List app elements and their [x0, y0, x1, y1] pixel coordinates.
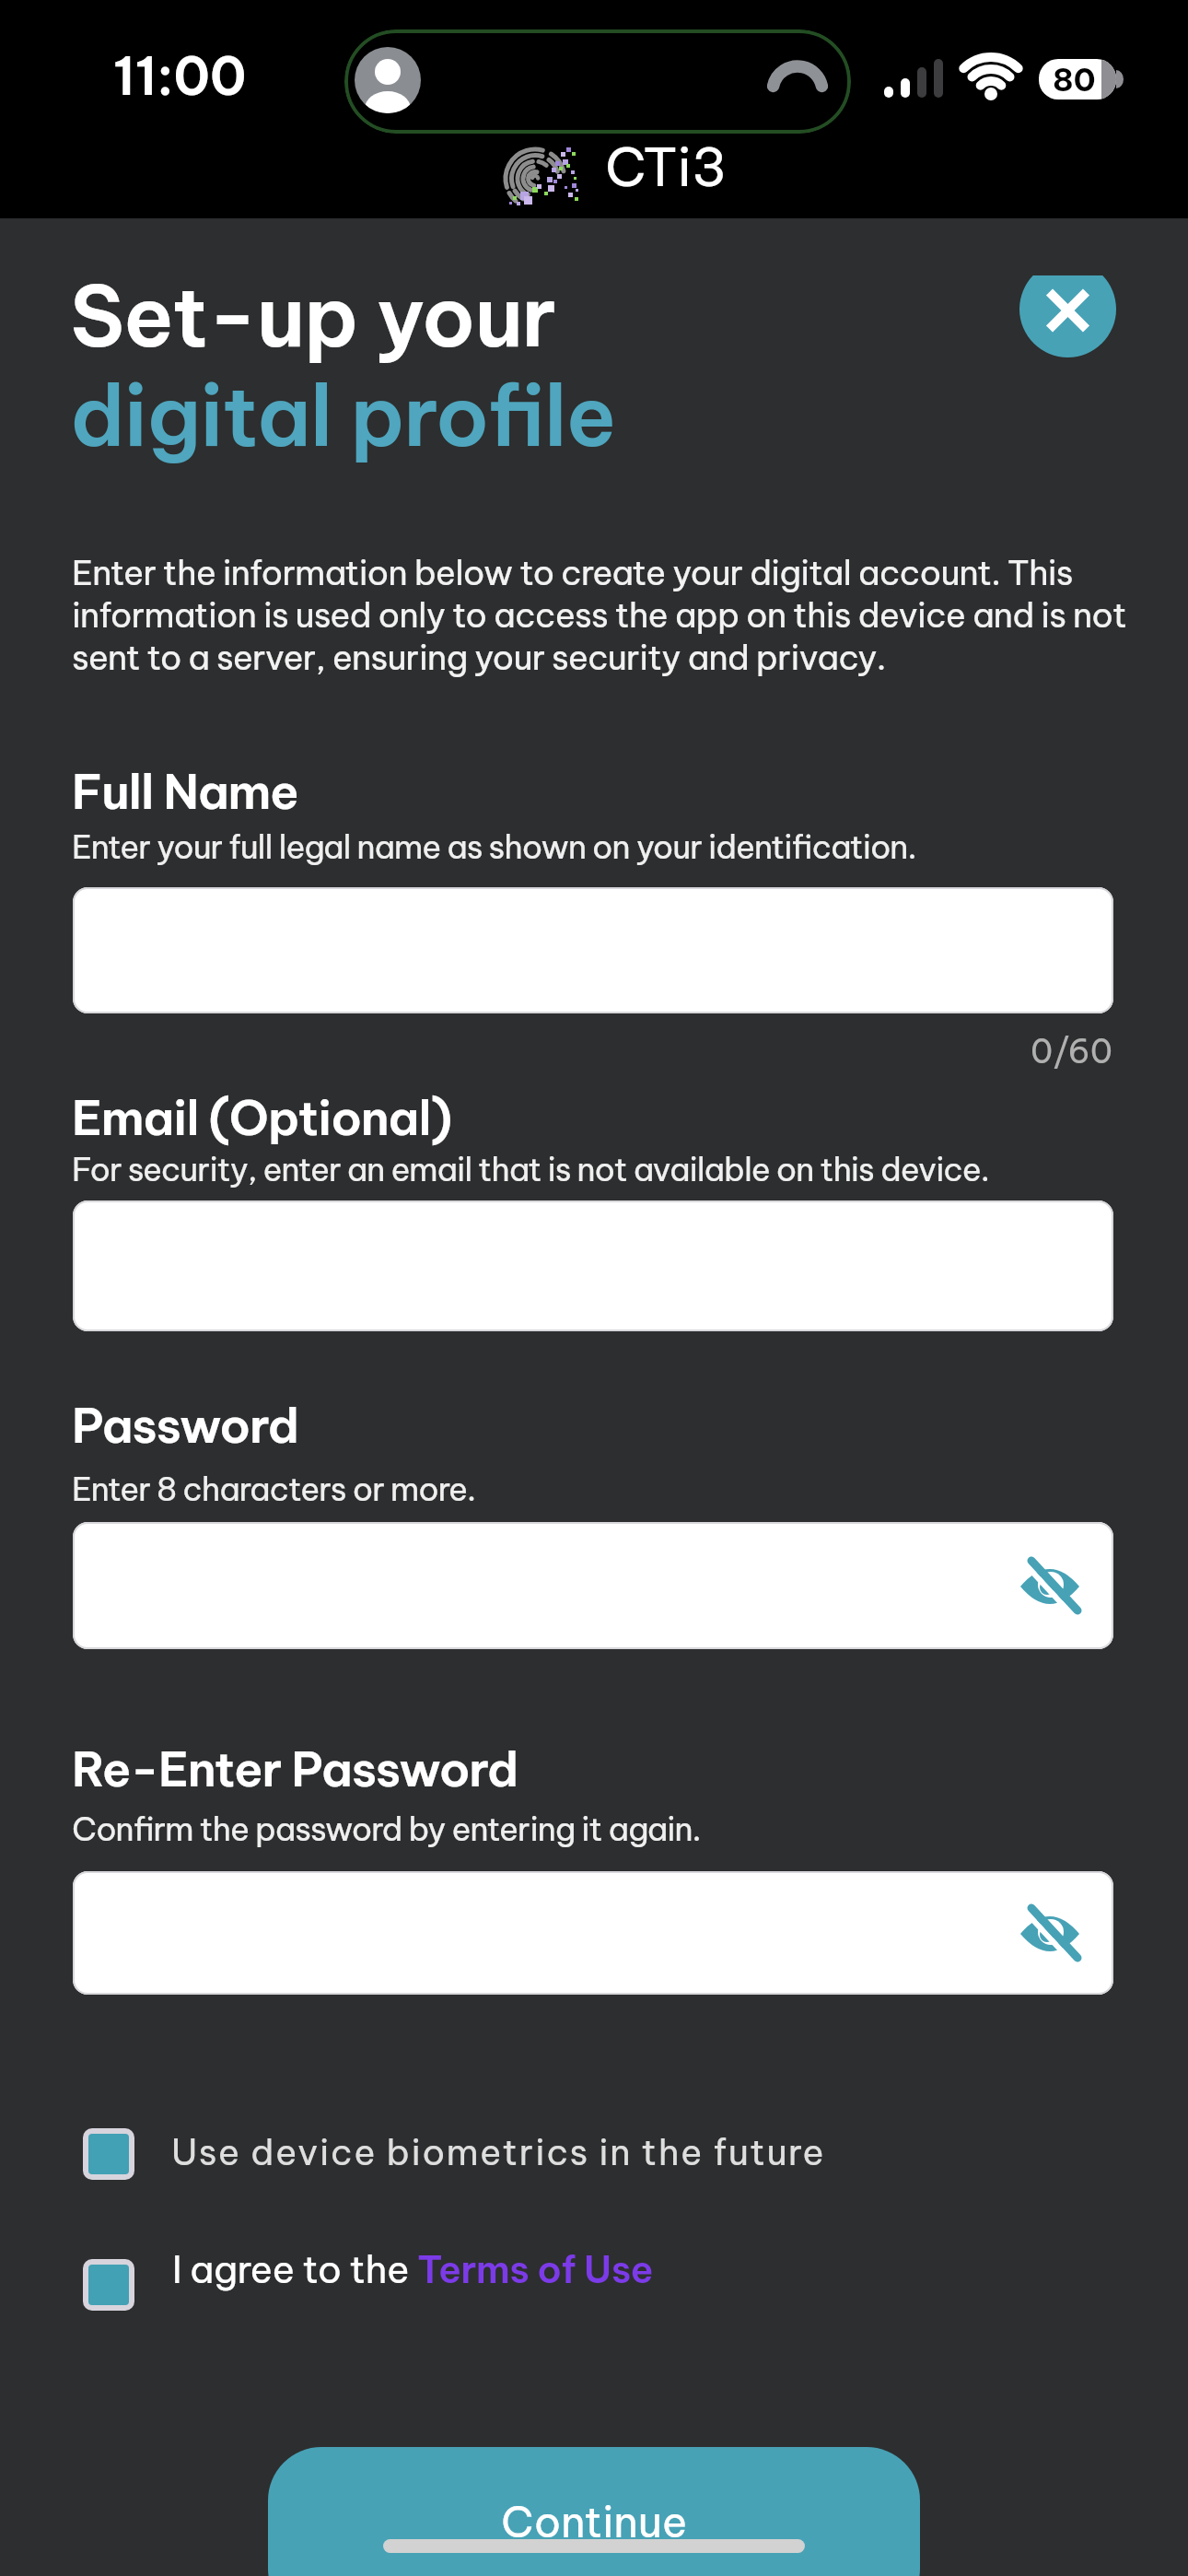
staticText: For security, enter an email that is not… [72, 1149, 989, 1189]
staticText: Use device biometrics in the future [171, 2129, 826, 2174]
button[interactable] [73, 1522, 1113, 1649]
button[interactable] [73, 887, 1113, 1013]
staticText: CTi3 [605, 133, 728, 200]
button[interactable] [73, 1871, 1113, 1995]
staticText: 0/60 [1031, 1030, 1113, 1072]
staticText: Password [72, 1395, 298, 1456]
staticText: Re-Enter Password [72, 1739, 518, 1799]
button[interactable] [73, 1200, 1113, 1331]
staticText: Continue [501, 2495, 688, 2548]
staticText: Enter the information below to create yo… [72, 551, 1126, 679]
staticText: 80 [1053, 60, 1096, 100]
button[interactable] [1019, 275, 1116, 357]
button[interactable] [1019, 1557, 1080, 1614]
staticText: Enter your full legal name as shown on y… [72, 826, 916, 867]
button[interactable] [83, 2259, 134, 2311]
button[interactable]: I agree to the Terms of Use [172, 2245, 654, 2293]
staticText: Full Name [72, 761, 298, 822]
staticText: Set-up your [70, 263, 556, 369]
staticText: 11:00 [113, 42, 247, 109]
staticText: Enter 8 characters or more. [72, 1469, 475, 1509]
button[interactable]: Continue [268, 2447, 920, 2576]
button[interactable] [1019, 1904, 1080, 1961]
staticText: digital profile [70, 363, 616, 468]
staticText: Email (Optional) [72, 1087, 452, 1148]
staticText: Confirm the password by entering it agai… [72, 1809, 701, 1849]
button[interactable] [83, 2128, 134, 2180]
